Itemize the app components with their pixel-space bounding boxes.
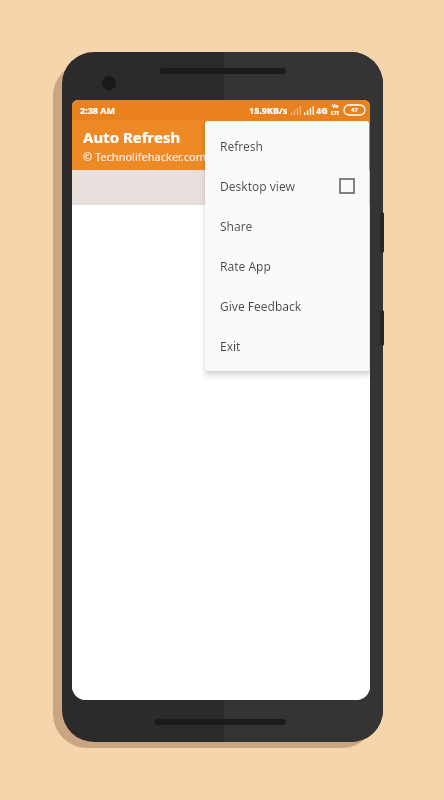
staticText: Rate App [220,258,271,274]
button[interactable]: Give Feedback [205,286,369,326]
staticText: Exit [220,338,241,354]
staticText: 47 [351,106,358,114]
staticText: 4G [316,104,328,116]
button[interactable]: Rate App [205,246,369,286]
button[interactable]: Exit [205,326,369,366]
staticText: Desktop view [220,178,295,194]
button[interactable]: Desktop view [205,166,369,206]
other: Desktop view checkbox [340,179,354,193]
staticText: Refresh [220,138,264,154]
staticText: 2:38 AM [80,104,116,116]
staticText: Give Feedback [220,298,302,314]
staticText: LTE [331,110,340,117]
staticText: Auto Refresh [83,127,181,147]
staticText: 15.9KB/s [249,104,288,116]
staticText: Vo [332,103,339,110]
button[interactable]: Share [205,206,369,246]
button[interactable]: Refresh [205,126,369,166]
staticText: Share [220,218,253,234]
staticText: © Technolifehacker.com [83,149,207,164]
